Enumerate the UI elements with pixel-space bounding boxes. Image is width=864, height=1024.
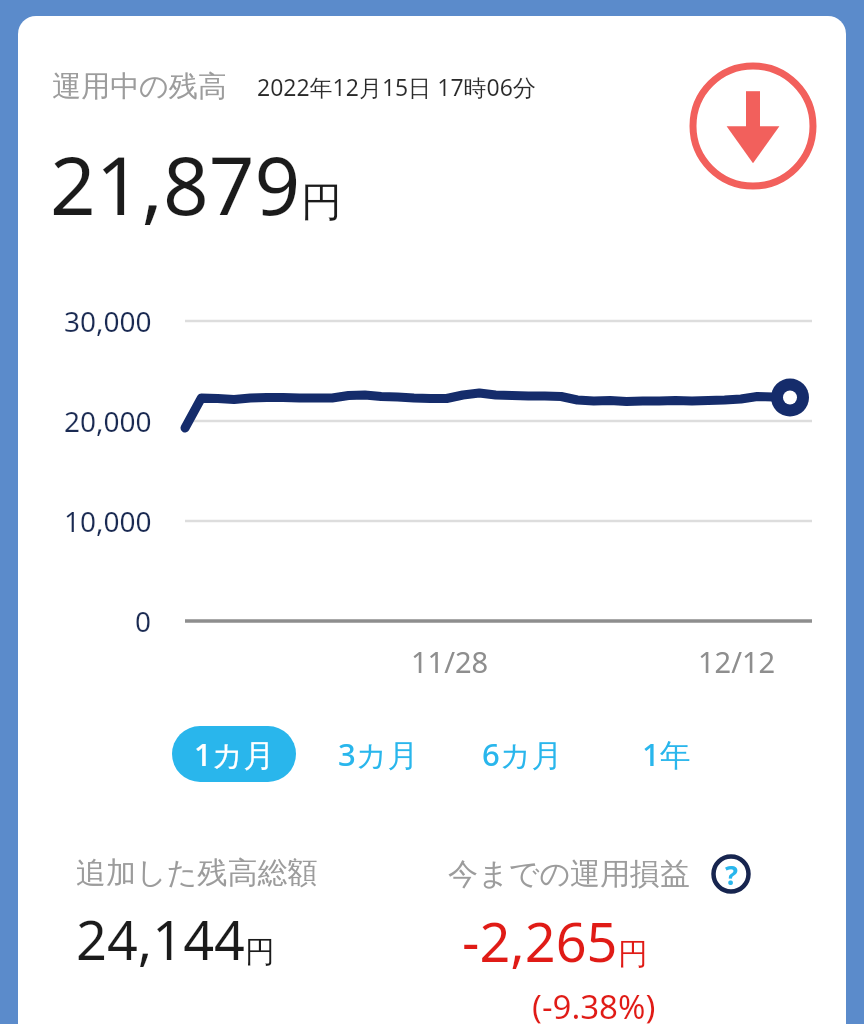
button[interactable]: 3カ月 — [316, 726, 440, 782]
staticText: 1カ月 — [194, 733, 275, 775]
button[interactable]: 6カ月 — [460, 726, 584, 782]
staticText: 追加した残高総額 — [76, 854, 318, 892]
staticText: 円 — [618, 935, 648, 973]
staticText: 円 — [301, 177, 342, 229]
button[interactable]: 入金する — [689, 62, 817, 190]
staticText: 2022年12月15日 17時06分 — [257, 71, 536, 102]
button[interactable]: 運用損益とは — [711, 854, 751, 894]
staticText: 運用中の残高 — [52, 68, 227, 105]
staticText: 円 — [245, 933, 275, 971]
staticText: 21,879 — [50, 129, 301, 238]
button[interactable]: 1カ月 — [172, 726, 296, 782]
staticText: (-9.38%) — [532, 984, 656, 1024]
staticText: -2,265 — [462, 904, 618, 978]
staticText: 20,000 — [64, 402, 152, 440]
staticText: 11/28 — [411, 642, 489, 681]
staticText: 3カ月 — [338, 733, 419, 775]
staticText: 10,000 — [64, 502, 152, 540]
staticText: 1年 — [642, 733, 691, 775]
staticText: 0 — [135, 602, 152, 640]
staticText: 30,000 — [64, 302, 152, 340]
button[interactable]: 1年 — [604, 726, 728, 782]
staticText: 今までの運用損益 — [448, 855, 691, 893]
staticText: 24,144 — [76, 902, 245, 976]
staticText: ? — [725, 856, 738, 893]
staticText: 6カ月 — [482, 733, 563, 775]
staticText: 12/12 — [698, 642, 776, 681]
